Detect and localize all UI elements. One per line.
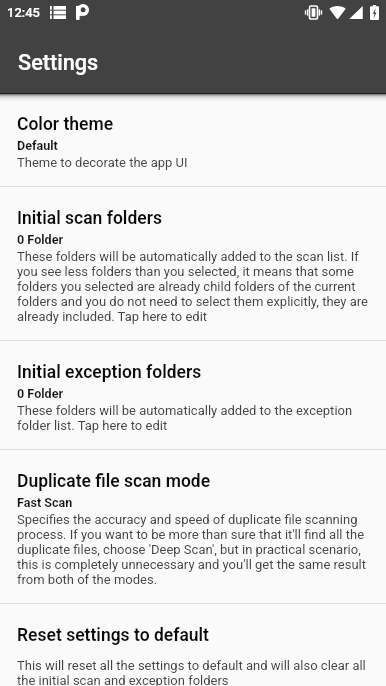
staticText: Initial exception folders (17, 362, 202, 383)
staticText: These folders will be automatically adde… (17, 249, 368, 324)
staticText: Color theme (17, 114, 114, 135)
button[interactable]: Initial exception folders (0, 341, 386, 449)
staticText: 0 Folder (17, 232, 64, 247)
button[interactable]: Color theme (0, 93, 386, 186)
staticText: Fast Scan (17, 495, 73, 510)
button[interactable]: Duplicate file scan mode (0, 450, 386, 603)
staticText: Settings (18, 50, 99, 75)
staticText: These folders will be automatically adde… (17, 403, 368, 433)
button[interactable]: Reset settings to default (0, 604, 386, 686)
staticText: Specifies the accuracy and speed of dupl… (17, 512, 368, 587)
button[interactable]: Initial scan folders (0, 187, 386, 340)
staticText: Default (17, 138, 58, 153)
staticText: 0 Folder (17, 386, 64, 401)
staticText: 12:45 (7, 5, 40, 20)
staticText: Reset settings to default (17, 625, 209, 646)
staticText: Theme to decorate the app UI (17, 155, 188, 170)
staticText: Duplicate file scan mode (17, 471, 211, 492)
staticText: Initial scan folders (17, 208, 162, 229)
staticText: This will reset all the settings to defa… (17, 658, 368, 686)
